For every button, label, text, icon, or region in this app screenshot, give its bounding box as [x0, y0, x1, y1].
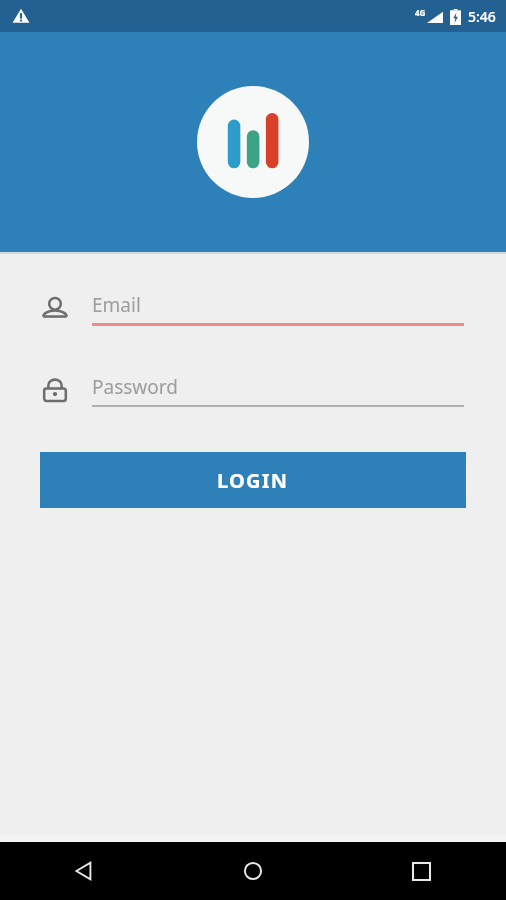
button[interactable]: LOGIN — [40, 452, 466, 508]
staticText: 5:46 — [468, 7, 496, 26]
button[interactable]: Password — [40, 374, 464, 407]
staticText: 4G — [415, 7, 426, 18]
staticText: LOGIN — [217, 467, 289, 494]
other: Password — [40, 377, 70, 403]
staticText: Email — [92, 292, 141, 318]
button[interactable]: Email — [40, 292, 464, 326]
button[interactable]: Back — [0, 842, 168, 900]
button[interactable]: Home — [168, 842, 337, 900]
other: Email — [40, 296, 70, 322]
button[interactable]: Recent apps — [337, 842, 506, 900]
staticText: Password — [92, 374, 178, 400]
